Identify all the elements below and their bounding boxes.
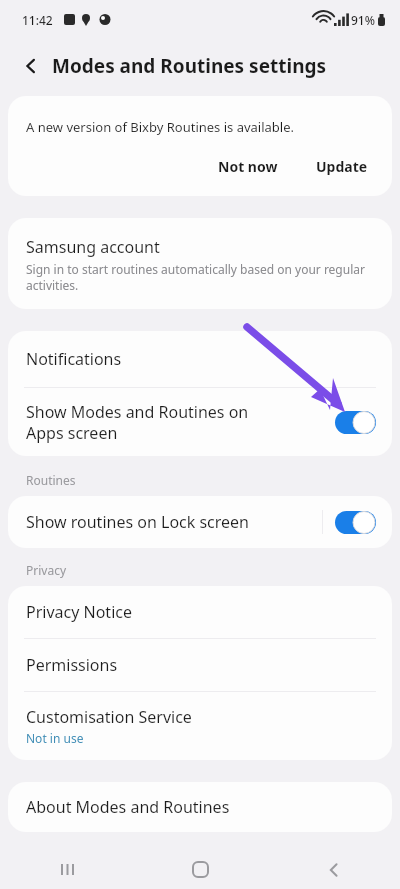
button[interactable]: Back [267, 850, 400, 889]
staticText: Routines [26, 472, 76, 488]
staticText: About Modes and Routines [26, 796, 230, 818]
button[interactable]: Update [306, 151, 378, 182]
staticText: Update [316, 157, 368, 176]
staticText: Modes and Routines settings [52, 53, 327, 79]
staticText: Show Modes and Routines on Apps screen [26, 401, 256, 444]
button[interactable]: About Modes and Routines [8, 782, 392, 832]
button[interactable]: Show Modes and Routines on Apps screen [8, 388, 392, 456]
staticText: 11:42 [22, 12, 53, 28]
staticText: Notifications [26, 348, 122, 370]
button[interactable]: Samsung account [8, 218, 392, 309]
button[interactable]: Notifications [8, 331, 392, 387]
staticText: Not in use [26, 730, 84, 746]
button[interactable]: Toggle on [335, 411, 376, 434]
button[interactable]: Permissions [8, 639, 392, 691]
staticText: 91% [351, 12, 375, 28]
staticText: Samsung account [26, 236, 160, 258]
button[interactable]: Toggle on [335, 511, 376, 534]
staticText: Permissions [26, 654, 118, 676]
button[interactable]: Recent apps [0, 850, 134, 889]
button[interactable]: Privacy Notice [8, 586, 392, 638]
staticText: Privacy Notice [26, 601, 132, 623]
staticText: Privacy [26, 562, 67, 578]
button[interactable]: Back [14, 49, 48, 83]
button[interactable]: Not now [208, 151, 288, 182]
button[interactable]: Show routines on Lock screen [8, 496, 392, 548]
staticText: Show routines on Lock screen [26, 511, 250, 533]
button[interactable]: Home [134, 850, 267, 889]
staticText: Not now [218, 157, 278, 176]
staticText: A new version of Bixby Routines is avail… [26, 118, 295, 136]
staticText: Customisation Service [26, 706, 192, 728]
button[interactable]: Customisation Service [8, 692, 392, 760]
staticText: Sign in to start routines automatically … [26, 261, 374, 293]
